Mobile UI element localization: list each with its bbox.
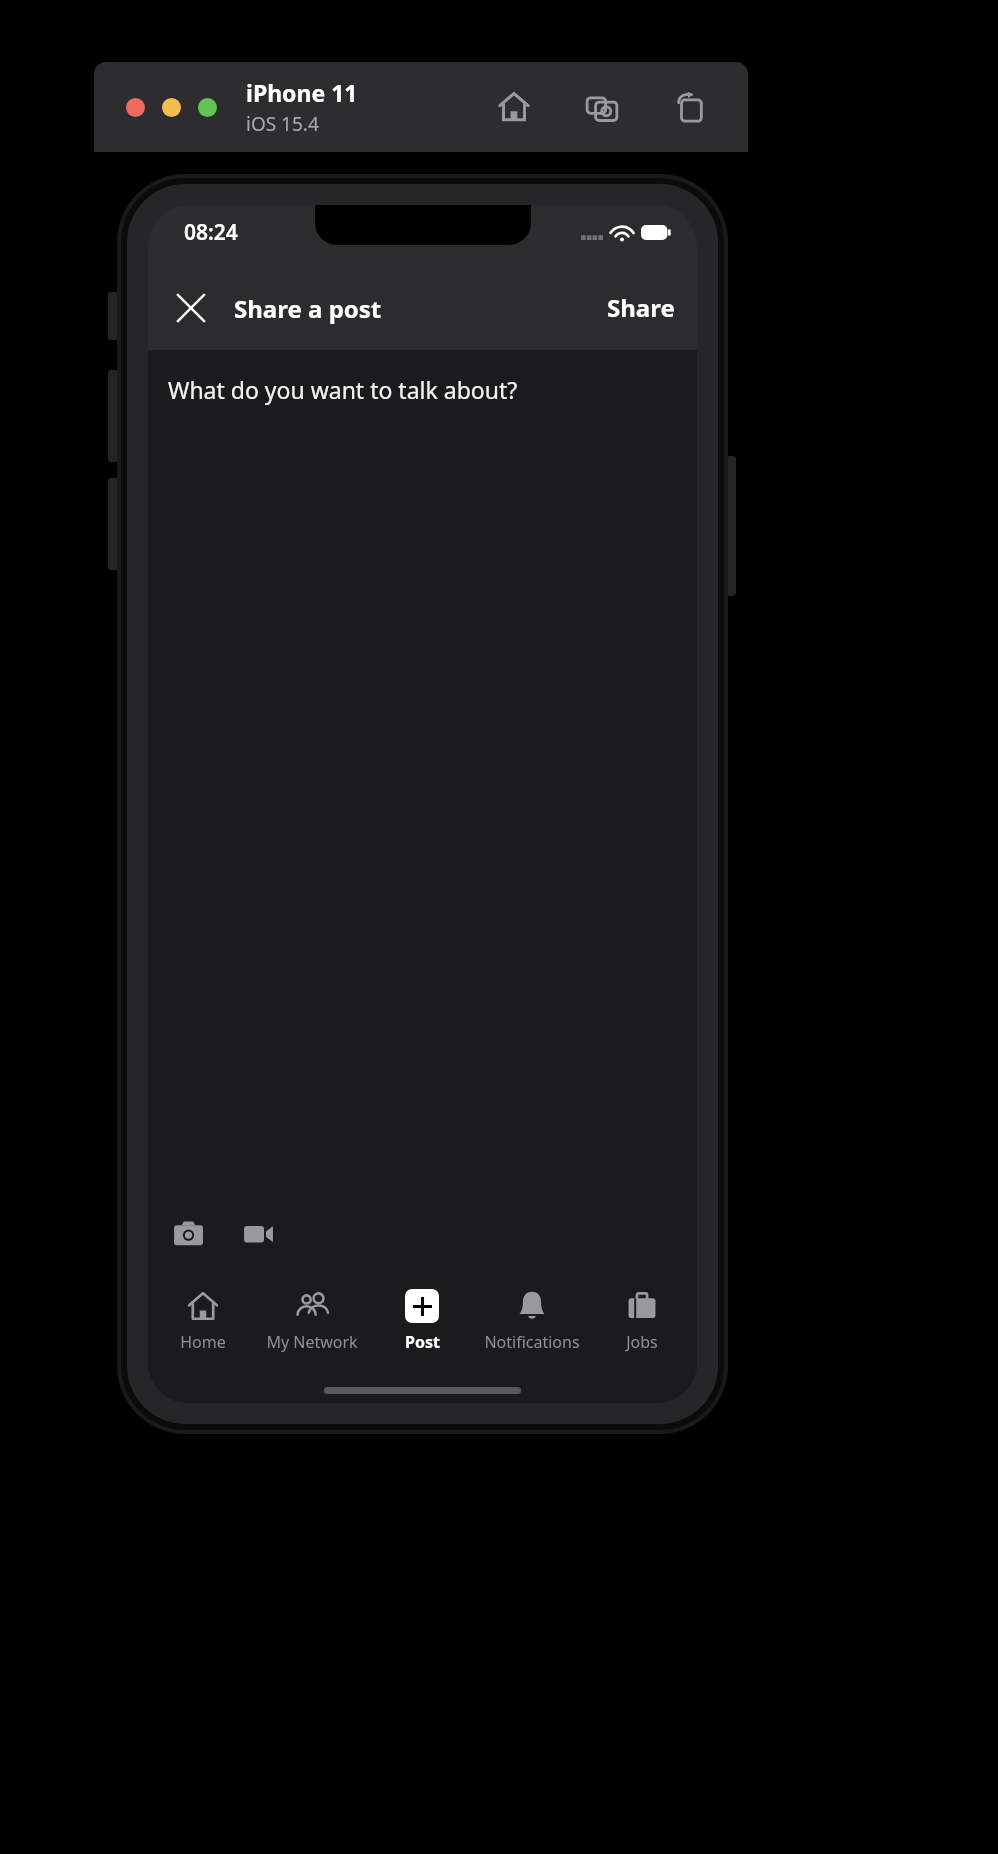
button[interactable]: My Network — [257, 1265, 367, 1377]
staticText: Home — [180, 1331, 226, 1353]
button[interactable]: Post — [367, 1265, 477, 1377]
button[interactable]: Close — [168, 285, 214, 331]
button[interactable]: Maximize — [198, 98, 217, 117]
button[interactable]: Home — [494, 87, 534, 127]
staticText: Jobs — [626, 1331, 658, 1353]
button[interactable]: Share — [585, 279, 697, 336]
button[interactable]: Jobs — [587, 1265, 697, 1377]
button[interactable]: Add photo — [168, 1213, 208, 1253]
staticText: 08:24 — [184, 218, 238, 247]
button[interactable]: Close — [126, 98, 145, 117]
staticText: iPhone 11 — [246, 77, 358, 108]
staticText: My Network — [266, 1331, 358, 1353]
staticText: Notifications — [484, 1331, 580, 1353]
staticText: Share — [607, 291, 675, 324]
staticText: Post — [405, 1331, 440, 1353]
staticText: Share a post — [234, 292, 382, 325]
button[interactable]: Rotate — [670, 87, 710, 127]
button[interactable]: Minimize — [162, 98, 181, 117]
button[interactable]: Notifications — [477, 1265, 587, 1377]
button[interactable]: What do you want to talk about? — [148, 350, 697, 1265]
staticText: What do you want to talk about? — [168, 374, 518, 405]
staticText: iOS 15.4 — [246, 111, 319, 137]
button[interactable]: Home — [148, 1265, 257, 1377]
button[interactable]: Add video — [238, 1213, 278, 1253]
button[interactable]: Screenshot — [582, 87, 622, 127]
